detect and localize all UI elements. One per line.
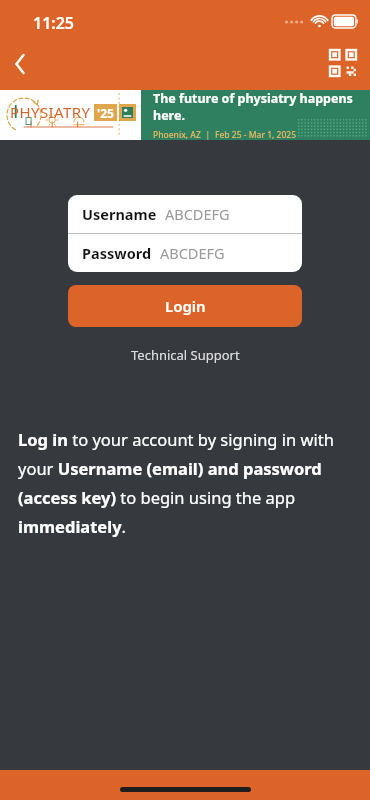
staticText: ABCDEFG <box>165 204 230 224</box>
button[interactable]: Scan QR code <box>330 50 356 76</box>
staticText: | <box>201 129 215 140</box>
staticText: ABCDEFG <box>160 243 225 263</box>
staticText: PHYSIATRY <box>10 102 91 122</box>
staticText: Username <box>82 204 157 224</box>
button[interactable]: Technical Support <box>121 342 250 368</box>
button[interactable]: Password <box>68 234 302 272</box>
button[interactable]: Back <box>2 46 38 82</box>
staticText: Technical Support <box>131 346 240 364</box>
staticText: Feb 25 - Mar 1, 2025 <box>215 129 297 140</box>
button[interactable]: Login <box>68 285 302 327</box>
staticText: The future of physiatry happens here. <box>153 90 370 124</box>
button[interactable]: Username <box>68 195 302 233</box>
staticText: '25 <box>97 105 114 121</box>
staticText: Phoenix, AZ <box>153 129 201 140</box>
staticText: Password <box>82 243 152 263</box>
staticText: 11:25 <box>33 12 75 34</box>
staticText: Login <box>165 296 206 316</box>
staticText: Log in to your account by signing in wit… <box>18 428 352 538</box>
